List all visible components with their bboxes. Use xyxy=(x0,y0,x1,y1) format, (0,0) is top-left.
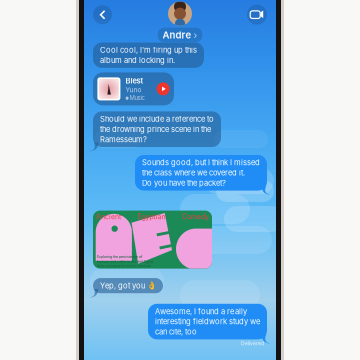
staticText: Ancient xyxy=(96,213,121,221)
staticText: Should we include a reference to the dro… xyxy=(100,114,214,144)
staticText: Exploring the persistence of humour and … xyxy=(97,255,154,268)
staticText: Awesome, I found a really interesting fi… xyxy=(155,307,260,336)
staticText: Sounds good, but I think I missed the cl… xyxy=(142,158,260,188)
button[interactable]: Back xyxy=(93,5,112,24)
staticText: › xyxy=(193,29,197,41)
button[interactable]: Sounds good, but I think I missed the cl… xyxy=(135,155,267,191)
button[interactable]: Yep, got you 👌 xyxy=(93,278,163,293)
button[interactable]: Should we include a reference to the dro… xyxy=(93,111,221,147)
staticText: Yep, got you 👌 xyxy=(100,281,156,290)
staticText: Music xyxy=(130,94,145,101)
button[interactable]: Cool cool, I'm firing up this album and … xyxy=(93,42,204,68)
button[interactable]: Ancient Egyptian Comedy link preview xyxy=(93,211,212,269)
staticText: Egyptian xyxy=(137,213,165,221)
staticText: Blest xyxy=(125,76,143,85)
staticText: Cool cool, I'm firing up this album and … xyxy=(100,45,197,65)
button[interactable]: Awesome, I found a really interesting fi… xyxy=(148,304,267,339)
staticText: Delivered xyxy=(241,340,264,346)
button[interactable]: Blest by Yuno on Apple Music xyxy=(93,72,174,105)
staticText: Comedy xyxy=(182,213,209,221)
staticText: Andre xyxy=(162,29,191,41)
staticText: Yuno xyxy=(125,86,141,94)
button[interactable]: FaceTime video call xyxy=(247,5,267,25)
button[interactable]: Andre, contact details xyxy=(157,2,202,42)
